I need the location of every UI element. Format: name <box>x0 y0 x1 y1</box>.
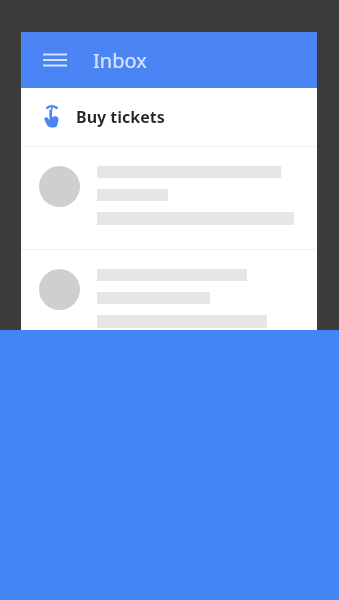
button[interactable] <box>21 147 317 249</box>
staticText: Inbox <box>93 47 147 74</box>
staticText: Buy tickets <box>76 106 165 128</box>
button[interactable]: Open navigation menu <box>38 43 72 77</box>
button[interactable]: Buy tickets <box>21 88 317 146</box>
button[interactable] <box>21 250 317 332</box>
